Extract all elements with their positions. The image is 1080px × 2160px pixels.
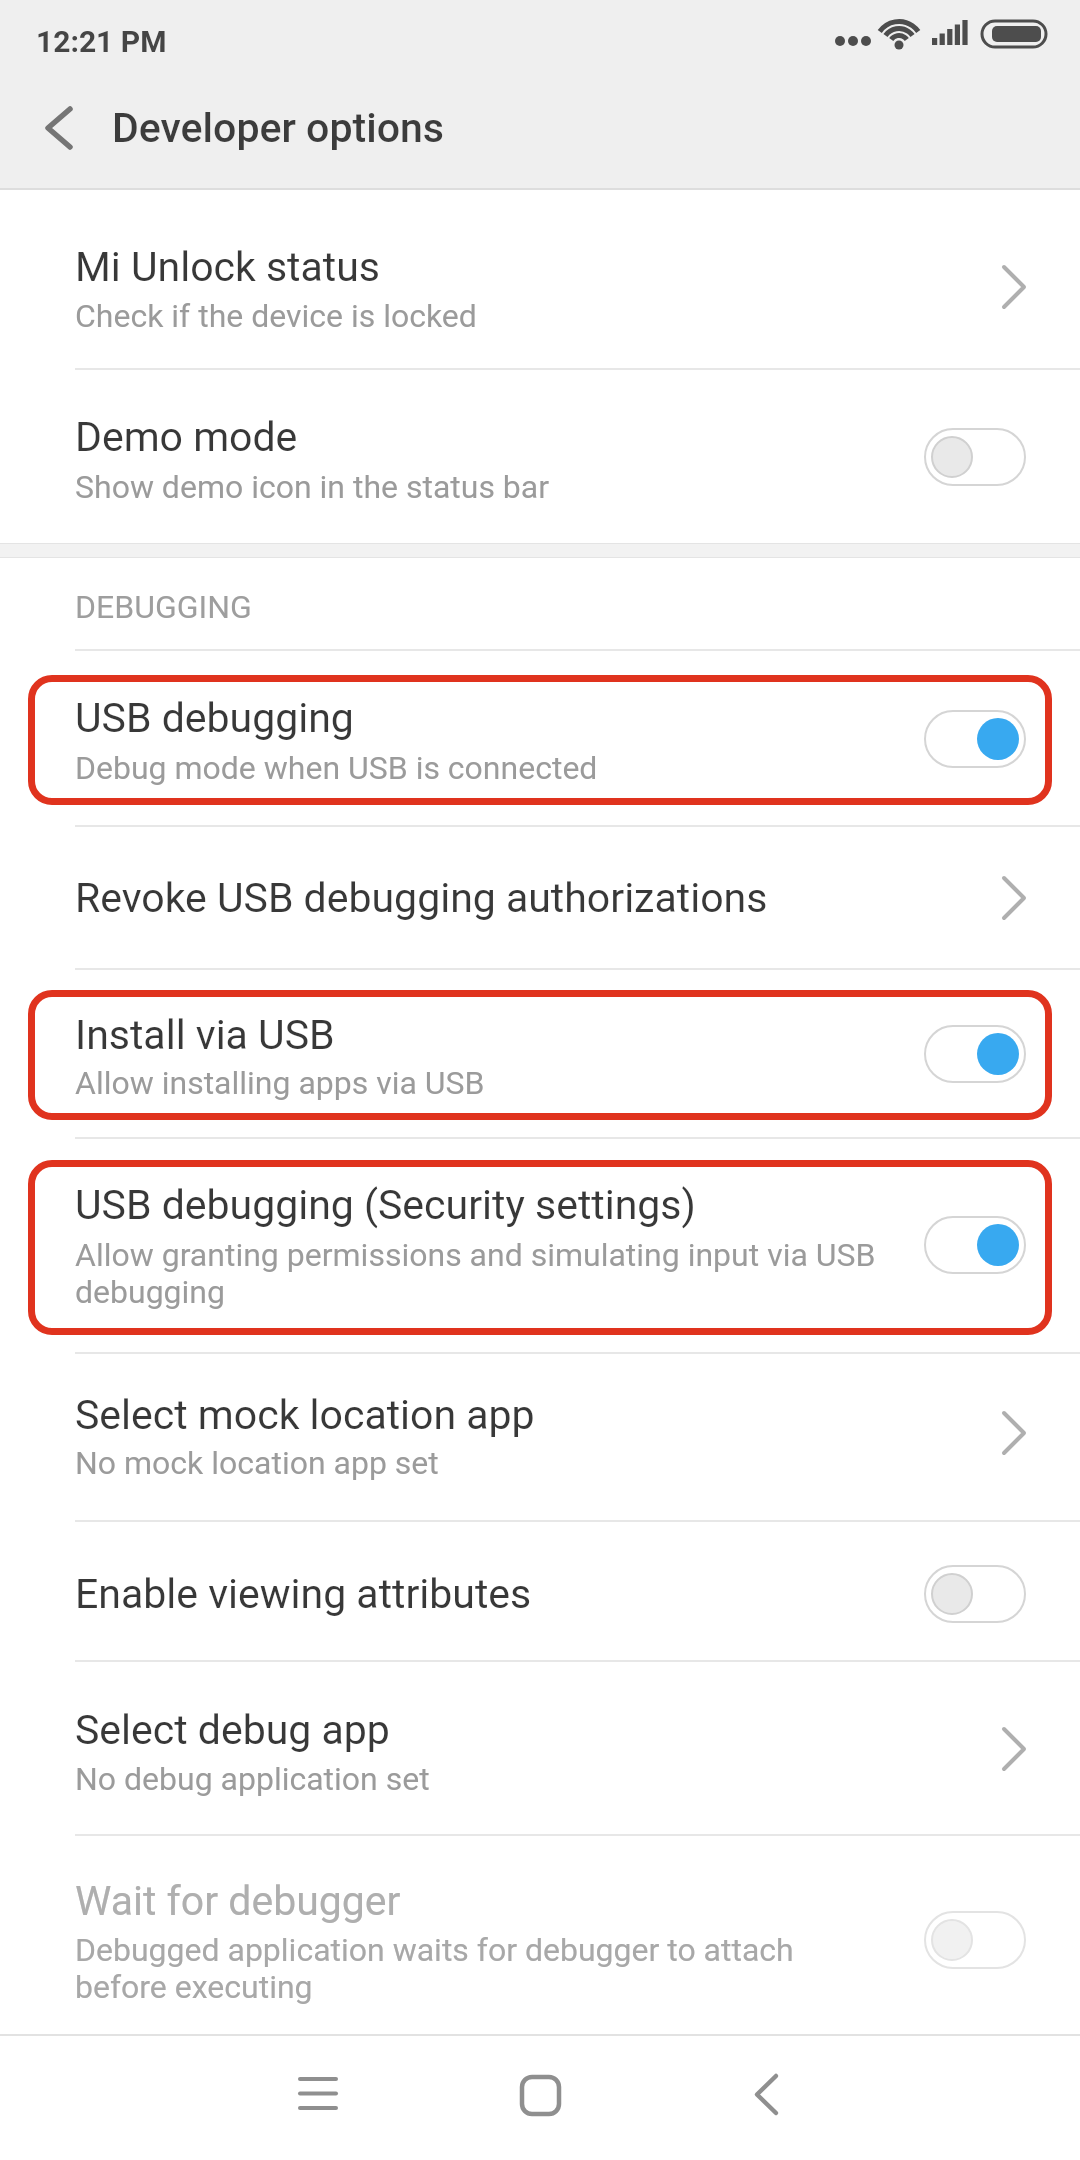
button[interactable]	[0, 1662, 1080, 1834]
button[interactable]	[510, 2065, 570, 2125]
staticText: DEBUGGING	[75, 588, 252, 626]
staticText: Select mock location app	[75, 1391, 535, 1439]
staticText: Allow installing apps via USB	[75, 1064, 485, 1102]
staticText: Enable viewing attributes	[75, 1570, 532, 1618]
button[interactable]	[0, 1522, 1080, 1660]
staticText: Show demo icon in the status bar	[75, 468, 550, 506]
staticText: Developer options	[112, 104, 445, 152]
button[interactable]	[737, 2065, 797, 2125]
button[interactable]	[0, 1836, 1080, 2034]
staticText: Mi Unlock status	[75, 243, 380, 291]
staticText: Demo mode	[75, 413, 298, 461]
button[interactable]	[0, 827, 1080, 968]
staticText: Revoke USB debugging authorizations	[75, 874, 768, 922]
staticText: USB debugging (Security settings)	[75, 1181, 696, 1229]
staticText: USB debugging	[75, 694, 354, 742]
staticText: 12:21 PM	[36, 24, 167, 59]
staticText: Check if the device is locked	[75, 297, 477, 335]
button[interactable]	[288, 2065, 348, 2125]
button[interactable]	[0, 970, 1080, 1137]
button[interactable]	[0, 370, 1080, 543]
button[interactable]	[0, 198, 1080, 368]
staticText: No debug application set	[75, 1760, 430, 1798]
staticText: Allow granting permissions and simulatin…	[75, 1236, 876, 1310]
staticText: Install via USB	[75, 1011, 335, 1059]
button[interactable]	[0, 651, 1080, 825]
staticText: Debug mode when USB is connected	[75, 749, 598, 787]
button[interactable]	[30, 95, 94, 161]
staticText: No mock location app set	[75, 1444, 439, 1482]
button[interactable]	[0, 1139, 1080, 1352]
staticText: Select debug app	[75, 1706, 390, 1754]
button[interactable]	[0, 1354, 1080, 1520]
staticText: Debugged application waits for debugger …	[75, 1931, 794, 2005]
staticText: Wait for debugger	[75, 1877, 401, 1925]
